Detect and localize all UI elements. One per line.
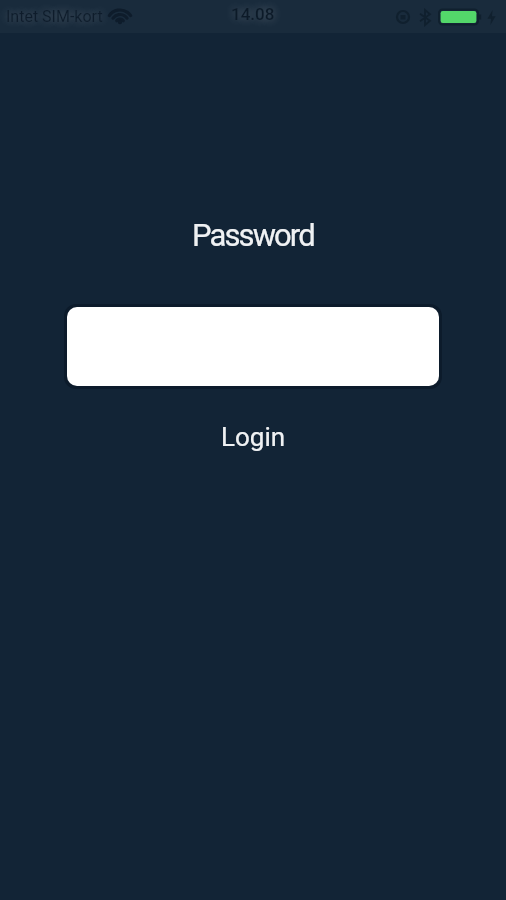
button[interactable]: Login	[221, 422, 286, 452]
button[interactable]	[67, 307, 439, 386]
staticText: Password	[192, 217, 314, 253]
staticText: 14.08	[231, 4, 275, 24]
staticText: Intet SIM-kort	[6, 7, 103, 26]
